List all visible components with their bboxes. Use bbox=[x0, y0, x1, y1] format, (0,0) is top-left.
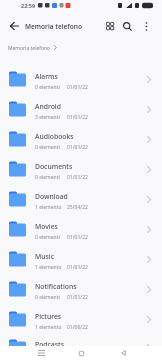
button[interactable]: Pictures bbox=[0, 304, 162, 334]
staticText: 01/06/22 bbox=[67, 324, 88, 331]
staticText: Android bbox=[35, 102, 61, 111]
staticText: Podcasts bbox=[35, 340, 64, 349]
button[interactable]: Notifications bbox=[0, 274, 162, 304]
button[interactable] bbox=[75, 347, 87, 359]
staticText: 01/01/22 bbox=[67, 84, 88, 91]
staticText: 1 elemento bbox=[35, 324, 62, 331]
button[interactable] bbox=[120, 19, 134, 33]
button[interactable] bbox=[140, 20, 152, 32]
button[interactable]: Memoria telefono bbox=[0, 40, 162, 54]
staticText: Download bbox=[35, 192, 68, 201]
staticText: Memoria telefono bbox=[25, 22, 82, 31]
staticText: 22:59 bbox=[21, 2, 36, 9]
button[interactable] bbox=[117, 347, 129, 359]
staticText: Alarms bbox=[35, 72, 58, 81]
button[interactable] bbox=[35, 347, 47, 359]
staticText: Music bbox=[35, 252, 54, 261]
button[interactable]: Documents bbox=[0, 154, 162, 184]
button[interactable]: Alarms bbox=[0, 64, 162, 94]
staticText: 0 elementi bbox=[35, 144, 60, 151]
staticText: Memoria telefono bbox=[8, 45, 51, 52]
staticText: 0 elementi bbox=[35, 174, 60, 181]
button[interactable]: Download bbox=[0, 184, 162, 214]
staticText: 25/04/22 bbox=[67, 204, 88, 211]
button[interactable]: Movies bbox=[0, 214, 162, 244]
button[interactable]: Audiobooks bbox=[0, 124, 162, 154]
staticText: 3 elementi bbox=[35, 114, 60, 121]
staticText: 0 elementi bbox=[35, 234, 60, 241]
staticText: 01/01/22 bbox=[67, 234, 88, 241]
button[interactable] bbox=[103, 19, 117, 33]
staticText: 01/01/22 bbox=[67, 144, 88, 151]
staticText: 1 elemento bbox=[35, 204, 62, 211]
staticText: Audiobooks bbox=[35, 132, 74, 141]
staticText: 1 elemento bbox=[35, 264, 62, 271]
staticText: 01/01/22 bbox=[67, 294, 88, 301]
staticText: Pictures bbox=[35, 312, 62, 321]
staticText: 01/01/22 bbox=[67, 264, 88, 271]
button[interactable] bbox=[7, 19, 21, 33]
button[interactable]: Music bbox=[0, 244, 162, 274]
staticText: 0 elementi bbox=[35, 352, 60, 359]
staticText: 01/01/22 bbox=[67, 114, 88, 121]
staticText: 01/01/22 bbox=[67, 352, 88, 359]
staticText: 01/01/22 bbox=[67, 174, 88, 181]
staticText: 0 elementi bbox=[35, 294, 60, 301]
button[interactable]: Podcasts bbox=[0, 334, 162, 360]
staticText: Documents bbox=[35, 162, 73, 171]
staticText: Notifications bbox=[35, 282, 77, 291]
staticText: 0 elementi bbox=[35, 84, 60, 91]
staticText: Movies bbox=[35, 222, 58, 231]
button[interactable]: Android bbox=[0, 94, 162, 124]
